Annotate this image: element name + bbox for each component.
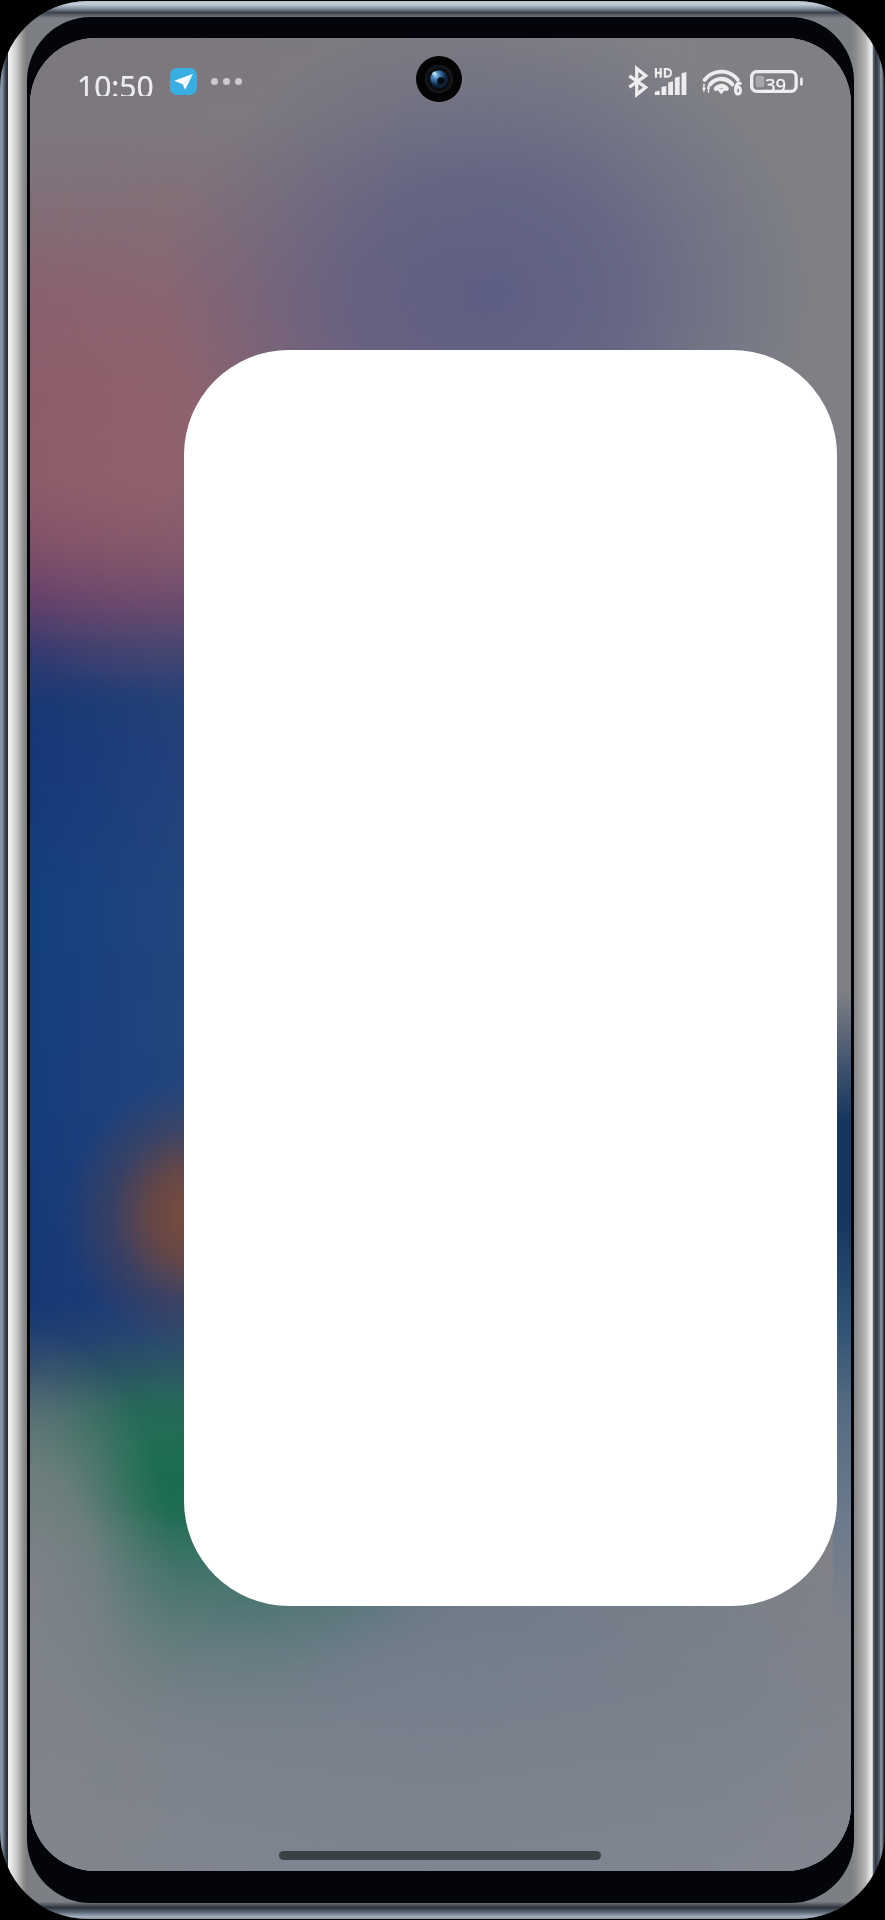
button[interactable]: [184, 350, 837, 1606]
staticText: 39: [765, 72, 787, 95]
staticText: 10:50: [77, 66, 154, 96]
button[interactable]: Home: [279, 1851, 601, 1860]
